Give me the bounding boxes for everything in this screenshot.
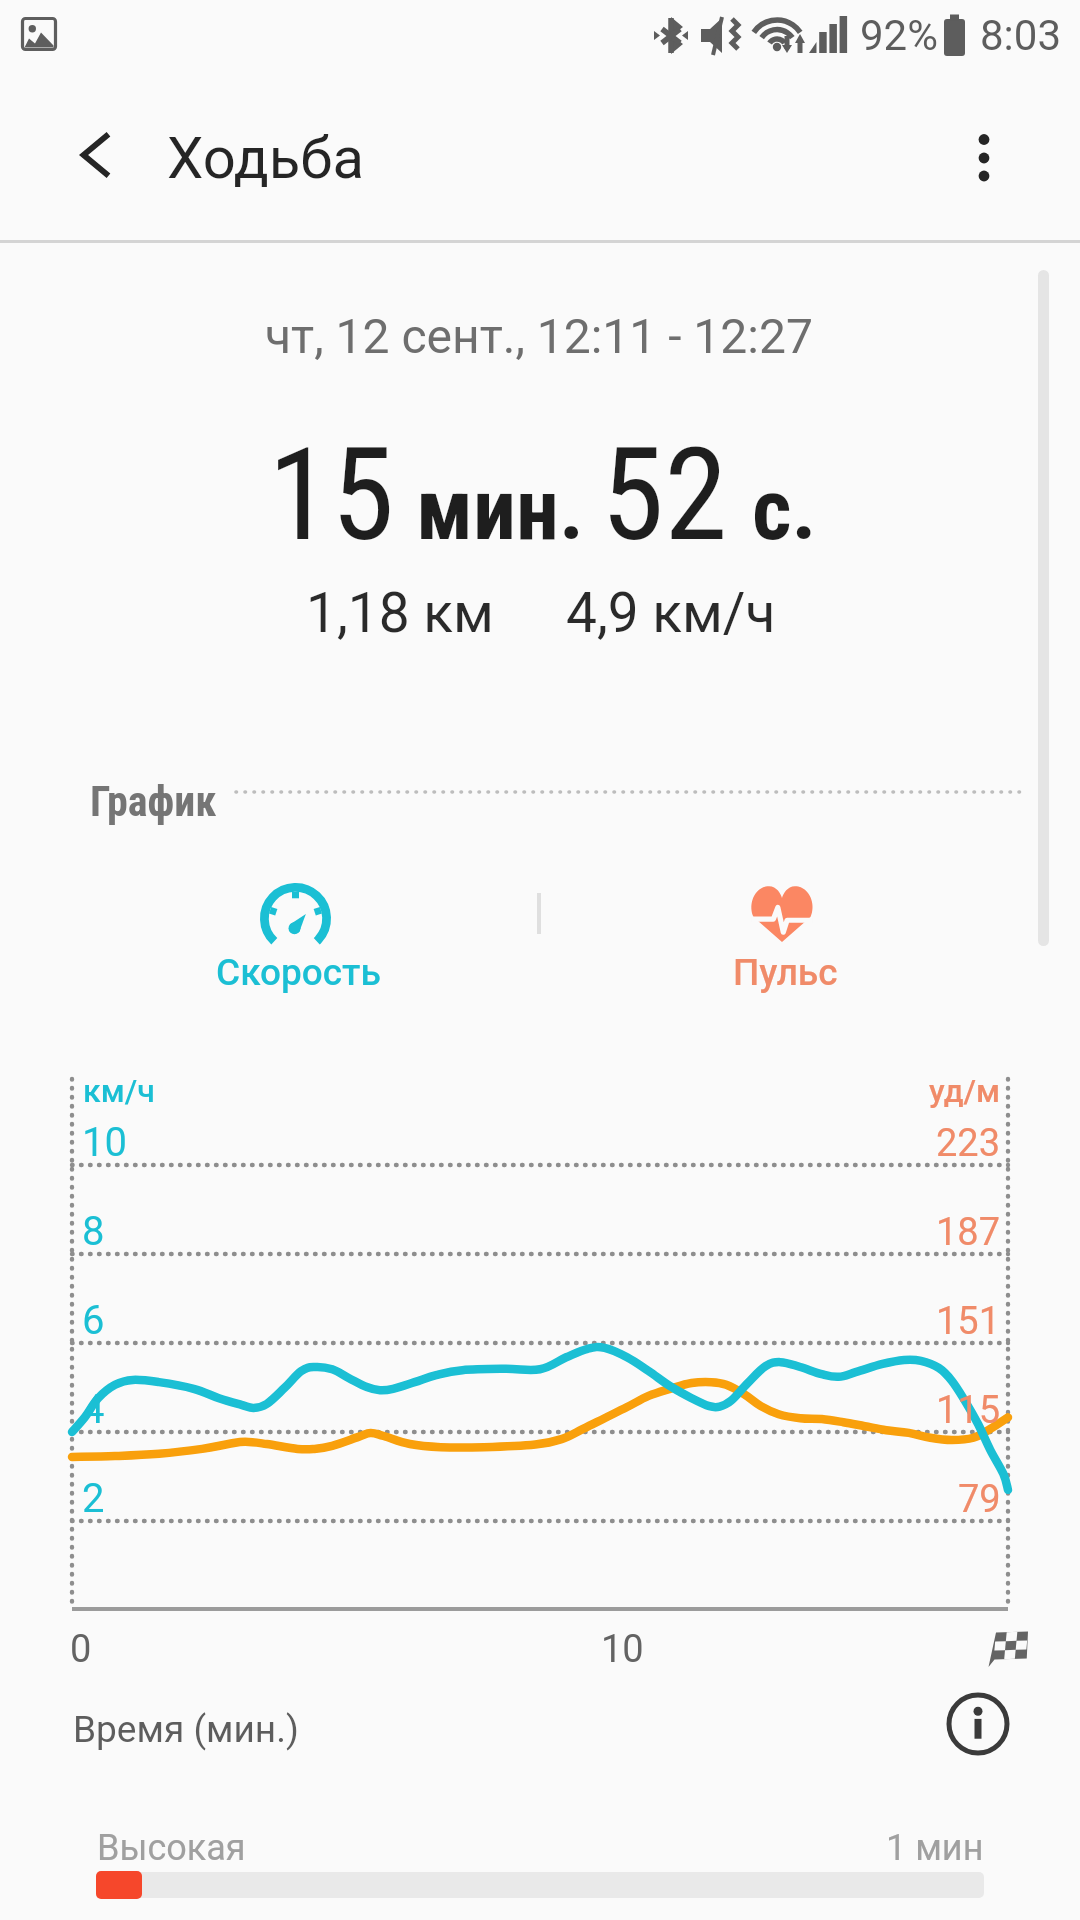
staticText: с. bbox=[752, 459, 817, 560]
staticText: 92% bbox=[860, 11, 938, 60]
staticText: уд/м bbox=[929, 1072, 1001, 1110]
staticText: 2 bbox=[82, 1475, 105, 1522]
button[interactable]: Information bbox=[946, 1692, 1010, 1756]
staticText: 4 bbox=[82, 1386, 105, 1433]
staticText: 10 bbox=[82, 1119, 127, 1166]
button[interactable] bbox=[636, 864, 930, 1004]
staticText: Ходьба bbox=[167, 124, 364, 192]
staticText: 1 мин bbox=[886, 1827, 984, 1869]
staticText: 0 bbox=[70, 1627, 92, 1672]
staticText: 10 bbox=[601, 1627, 644, 1672]
staticText: Высокая bbox=[97, 1827, 246, 1869]
staticText: 151 bbox=[936, 1299, 1001, 1344]
staticText: Время (мин.) bbox=[73, 1708, 299, 1751]
staticText: Пульс bbox=[733, 951, 838, 994]
staticText: км/ч bbox=[83, 1072, 155, 1110]
staticText: 52 bbox=[601, 420, 728, 570]
button[interactable]: Back bbox=[46, 105, 146, 205]
staticText: мин. bbox=[416, 459, 584, 560]
staticText: 79 bbox=[958, 1477, 1001, 1522]
button[interactable] bbox=[150, 864, 444, 1004]
staticText: 8 bbox=[82, 1208, 105, 1255]
staticText: 115 bbox=[936, 1388, 1001, 1433]
staticText: 4,9 км/ч bbox=[566, 581, 776, 645]
staticText: 223 bbox=[936, 1121, 1001, 1166]
staticText: 1,18 км bbox=[306, 581, 494, 645]
staticText: 187 bbox=[936, 1210, 1001, 1255]
staticText: Скорость bbox=[216, 951, 381, 994]
staticText: График bbox=[90, 777, 217, 826]
staticText: чт, 12 сент., 12:11 - 12:27 bbox=[265, 308, 813, 364]
staticText: 8:03 bbox=[980, 11, 1061, 60]
staticText: 6 bbox=[82, 1297, 105, 1344]
button[interactable]: More options bbox=[934, 106, 1034, 206]
staticText: 15 bbox=[268, 420, 395, 570]
